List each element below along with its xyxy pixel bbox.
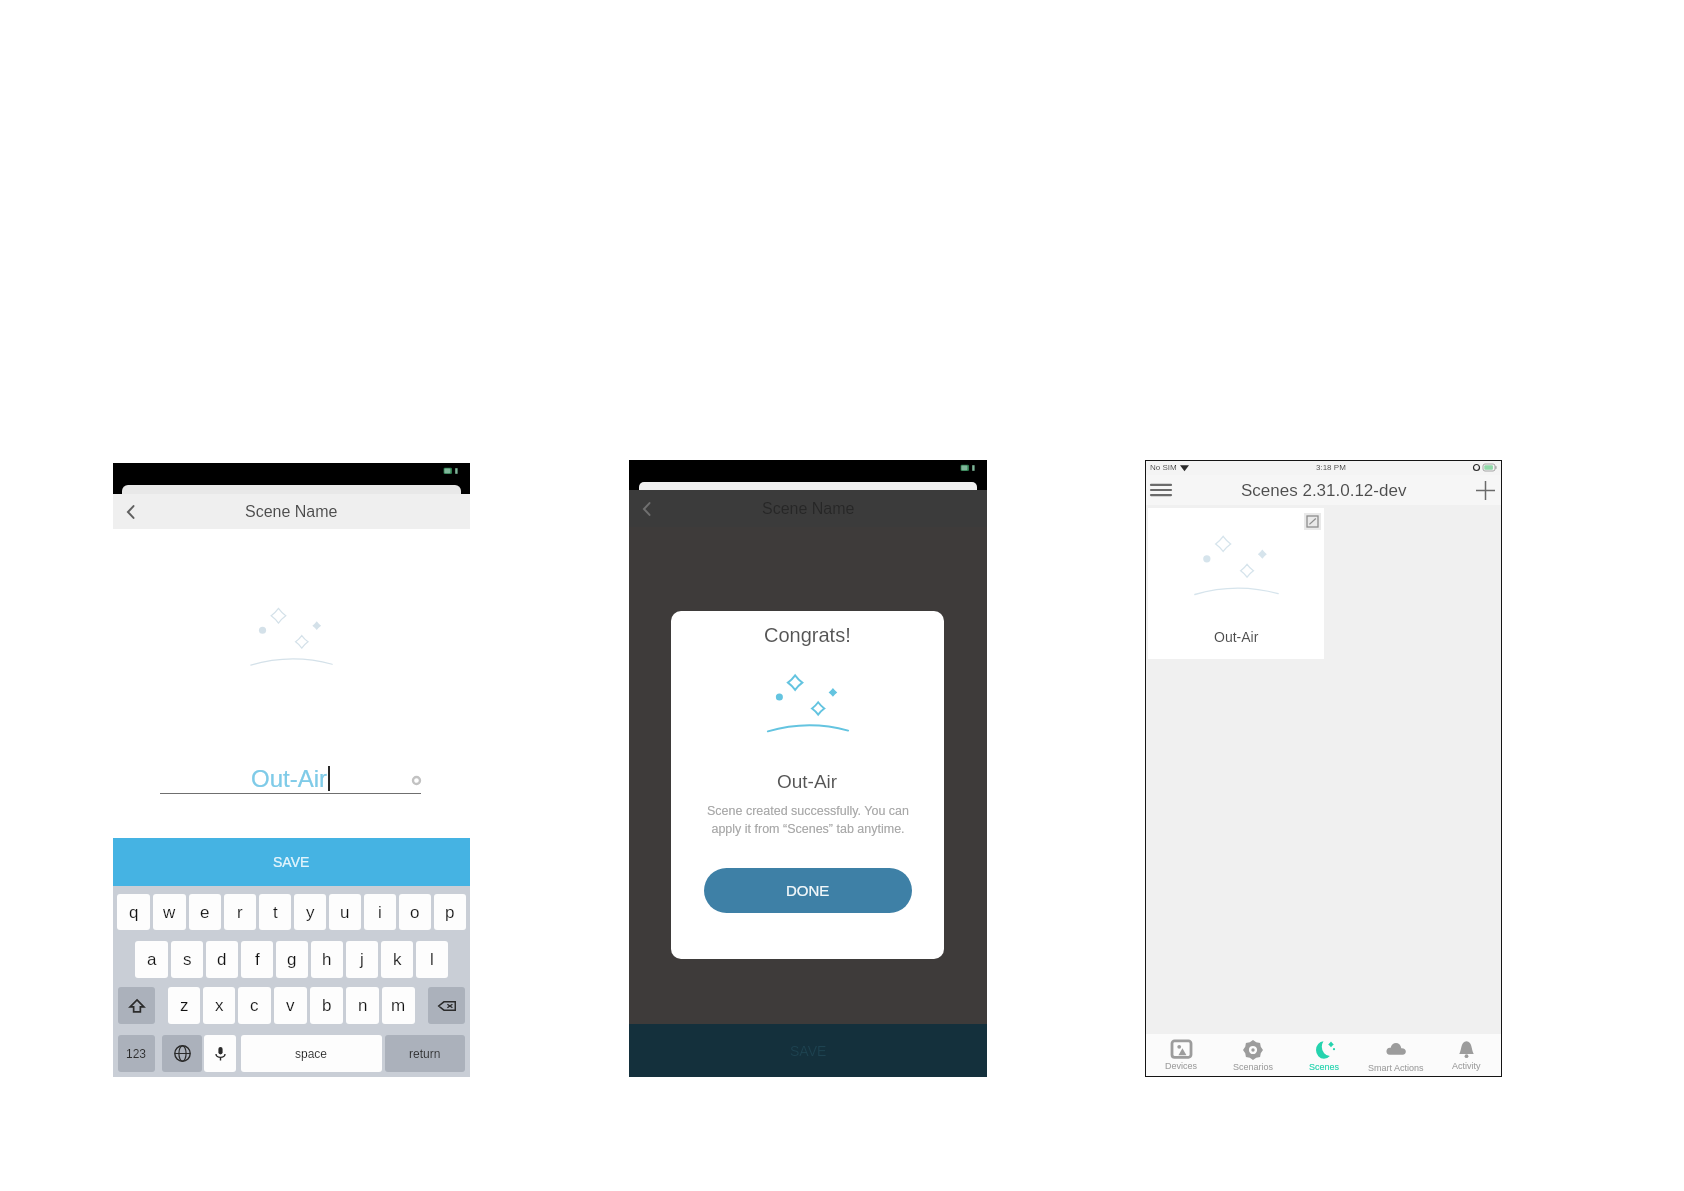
staticText: k [393,950,402,969]
button[interactable]: w [153,894,186,930]
button[interactable]: f [241,941,273,978]
staticText: t [273,903,278,922]
button[interactable]: Activity [1431,1034,1502,1077]
staticText: y [306,903,315,922]
staticText: Scenes [1309,1062,1340,1072]
button[interactable]: z [168,987,200,1024]
button[interactable]: y [294,894,326,930]
button[interactable]: SAVE [113,838,470,886]
button[interactable]: t [259,894,291,930]
button[interactable]: Shift [118,987,155,1024]
staticText: Scene Name [245,503,338,521]
staticText: 3:18 PM [1316,463,1346,472]
button[interactable]: Open menu [1148,477,1174,503]
staticText: p [445,903,455,922]
staticText: 123 [126,1047,147,1060]
button[interactable]: e [189,894,221,930]
button[interactable]: u [329,894,361,930]
button[interactable]: i [364,894,396,930]
button[interactable]: k [381,941,413,978]
button[interactable]: Back [113,494,148,529]
staticText: No SIM [1150,463,1177,472]
staticText: l [430,950,434,969]
staticText: f [255,950,260,969]
staticText: m [391,996,406,1015]
button[interactable]: Return [385,1035,465,1072]
staticText: u [340,903,350,922]
button[interactable]: v [274,987,307,1024]
button[interactable]: d [206,941,238,978]
staticText: o [410,903,420,922]
button[interactable]: b [310,987,343,1024]
staticText: q [129,903,139,922]
staticText: j [360,950,364,969]
staticText: n [358,996,368,1015]
button[interactable]: m [382,987,415,1024]
staticText: Devices [1165,1061,1198,1071]
button[interactable]: a [135,941,168,978]
button[interactable]: q [117,894,150,930]
button[interactable]: h [311,941,343,978]
button[interactable]: Scenarios [1217,1034,1289,1077]
button[interactable]: space [241,1035,382,1072]
button[interactable]: Backspace [428,987,465,1024]
button[interactable]: Numbers [118,1035,155,1072]
button[interactable]: Clear text [407,771,425,789]
staticText: Smart Actions [1368,1063,1424,1073]
staticText: Scenarios [1233,1062,1274,1072]
staticText: Out-Air [777,771,838,792]
staticText: SAVE [273,854,310,870]
staticText: Out-Air [251,765,328,792]
button[interactable]: Out-Air [1148,508,1324,659]
button[interactable]: Switch language [162,1035,202,1072]
staticText: a [147,950,157,969]
staticText: r [237,903,243,922]
button[interactable]: l [416,941,448,978]
staticText: SAVE [790,1043,827,1059]
staticText: s [183,950,192,969]
button[interactable]: Devices [1145,1034,1217,1077]
button[interactable]: n [346,987,379,1024]
button[interactable]: Edit scene [1304,513,1321,530]
button[interactable]: r [224,894,256,930]
staticText: DONE [786,882,830,899]
button[interactable]: Add scene [1472,477,1498,503]
staticText: i [378,903,382,922]
staticText: b [322,996,332,1015]
button[interactable]: Dictation [204,1035,236,1072]
staticText: Scene created successfully. You can appl… [707,804,909,836]
button[interactable]: DONE [704,868,912,913]
button[interactable]: p [434,894,466,930]
staticText: v [286,996,295,1015]
button[interactable]: c [238,987,271,1024]
staticText: return [409,1047,441,1060]
button[interactable]: j [346,941,378,978]
staticText: Out-Air [1214,629,1259,645]
staticText: e [200,903,210,922]
staticText: h [322,950,332,969]
staticText: Congrats! [764,624,851,646]
staticText: g [287,950,297,969]
staticText: x [215,996,224,1015]
staticText: Scenes 2.31.0.12-dev [1241,481,1407,500]
button[interactable]: x [203,987,235,1024]
button[interactable]: Smart Actions [1360,1034,1431,1077]
staticText: c [250,996,259,1015]
button[interactable]: g [276,941,308,978]
staticText: z [180,996,189,1015]
staticText: Scene Name [762,500,855,518]
button[interactable]: o [399,894,431,930]
staticText: d [217,950,227,969]
staticText: space [295,1047,328,1060]
button[interactable]: Scenes [1289,1034,1360,1077]
staticText: w [163,903,176,922]
button[interactable]: s [171,941,203,978]
staticText: Activity [1452,1061,1481,1071]
